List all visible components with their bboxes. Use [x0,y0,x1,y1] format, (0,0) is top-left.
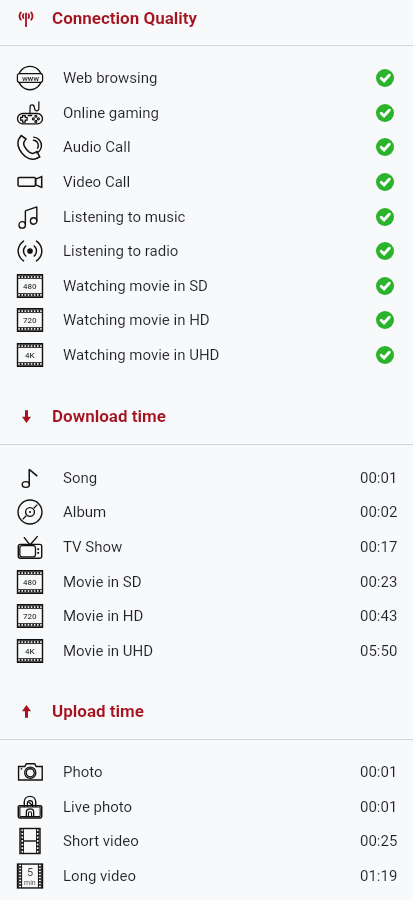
staticText: Watching movie in HD [63,311,210,329]
button[interactable]: Online gaming [0,95,413,130]
staticText: 01:19 [360,867,398,885]
button[interactable]: Song [0,460,413,495]
staticText: Movie in SD [63,573,142,591]
staticText: 720 [23,612,37,621]
other: Upload [19,704,34,719]
button[interactable]: TV Show [0,529,413,564]
button[interactable]: www [0,60,413,95]
staticText: Live photo [63,798,133,816]
staticText: Movie in HD [63,607,144,625]
staticText: 00:23 [360,573,398,591]
staticText: Video Call [63,173,131,191]
staticText: 00:43 [360,607,398,625]
button[interactable]: Signal strength [0,0,413,36]
staticText: Web browsing [63,69,158,87]
button[interactable]: Video Call [0,164,413,199]
staticText: 480 [23,282,37,291]
button[interactable]: 480 [0,564,413,599]
staticText: Connection Quality [52,8,198,28]
button[interactable]: Listening to radio [0,233,413,268]
staticText: Listening to music [63,208,186,226]
staticText: 00:01 [360,763,398,781]
button[interactable]: 4K [0,633,413,668]
staticText: min [24,879,36,887]
staticText: 480 [23,578,37,587]
button[interactable]: Listening to music [0,199,413,234]
staticText: Album [63,503,107,521]
other: Download [19,409,34,424]
button[interactable]: Upload [0,693,413,729]
other: Signal strength [18,10,34,27]
staticText: Watching movie in UHD [63,346,220,364]
button[interactable]: Download [0,398,413,434]
staticText: 05:50 [360,642,398,660]
staticText: 4K [25,647,35,656]
staticText: Online gaming [63,104,159,122]
staticText: Photo [63,763,103,781]
button[interactable]: 4K [0,337,413,372]
button[interactable]: 720 [0,302,413,337]
staticText: Listening to radio [63,242,179,260]
staticText: 00:01 [360,469,398,487]
button[interactable]: Album [0,494,413,529]
staticText: 00:01 [360,798,398,816]
staticText: 5 [27,866,34,879]
staticText: www [22,74,39,83]
staticText: 00:25 [360,832,398,850]
button[interactable]: Short video [0,823,413,858]
staticText: Short video [63,832,139,850]
staticText: Audio Call [63,138,131,156]
button[interactable]: Photo [0,754,413,789]
staticText: Watching movie in SD [63,277,208,295]
staticText: Song [63,469,98,487]
staticText: 00:02 [360,503,398,521]
staticText: Upload time [52,701,144,721]
staticText: 00:17 [360,538,398,556]
staticText: TV Show [63,538,123,556]
button[interactable]: Audio Call [0,129,413,164]
button[interactable]: 720 [0,598,413,633]
staticText: Long video [63,867,136,885]
staticText: Download time [52,406,166,426]
staticText: 4K [25,351,35,360]
staticText: 720 [23,316,37,325]
button[interactable]: Live photo [0,789,413,824]
staticText: Movie in UHD [63,642,154,660]
button[interactable]: 5 [0,858,413,893]
button[interactable]: 480 [0,268,413,303]
